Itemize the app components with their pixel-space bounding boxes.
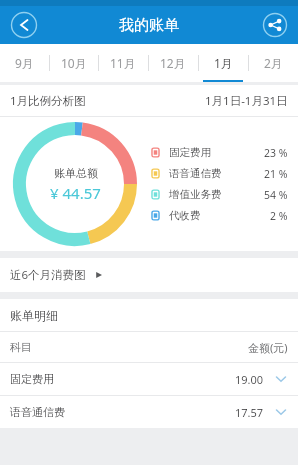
staticText: 12月 — [160, 55, 186, 71]
staticText: ¥ 44.57 — [50, 183, 101, 203]
button[interactable]: 增值业务费 — [150, 184, 288, 205]
staticText: 10月 — [61, 55, 87, 71]
button[interactable]: 1月 — [198, 44, 248, 82]
button[interactable]: 语音通信费 — [0, 396, 298, 428]
button[interactable]: 近6个月消费图 — [0, 258, 298, 292]
button[interactable]: 11月 — [98, 44, 148, 82]
button[interactable]: 10月 — [49, 44, 98, 82]
button[interactable]: 代收费 — [150, 205, 288, 226]
staticText: 2 % — [270, 209, 288, 223]
staticText: 23 % — [264, 146, 288, 160]
staticText: 21 % — [264, 167, 288, 181]
staticText: 我的账单 — [119, 16, 179, 35]
staticText: 账单明细 — [10, 308, 58, 323]
staticText: 2月 — [264, 55, 283, 71]
button[interactable]: 语音通信费 — [150, 163, 288, 184]
staticText: 11月 — [110, 55, 136, 71]
staticText: 54 % — [264, 188, 288, 202]
button[interactable]: 固定费用 — [150, 142, 288, 163]
button[interactable]: 固定费用 — [0, 363, 298, 395]
button[interactable]: 2月 — [248, 44, 298, 82]
button[interactable]: Share — [262, 12, 288, 38]
staticText: 增值业务费 — [169, 188, 222, 201]
staticText: 1月1日-1月31日 — [205, 93, 288, 109]
staticText: 19.00 — [235, 372, 264, 387]
staticText: 1月比例分析图 — [10, 93, 86, 109]
button[interactable]: 9月 — [0, 44, 49, 82]
staticText: 科目 — [10, 340, 32, 354]
staticText: 17.57 — [235, 405, 264, 420]
button[interactable]: Back — [10, 11, 38, 39]
staticText: 固定费用 — [10, 372, 54, 386]
staticText: 9月 — [15, 55, 34, 71]
staticText: 代收费 — [169, 209, 201, 222]
staticText: 语音通信费 — [10, 405, 65, 419]
staticText: 固定费用 — [169, 146, 211, 159]
staticText: 账单总额 — [54, 166, 98, 180]
staticText: 1月 — [214, 55, 233, 71]
staticText: 近6个月消费图 — [10, 267, 86, 283]
staticText: 语音通信费 — [169, 167, 222, 180]
button[interactable]: 12月 — [148, 44, 198, 82]
staticText: 金额(元) — [248, 340, 288, 355]
